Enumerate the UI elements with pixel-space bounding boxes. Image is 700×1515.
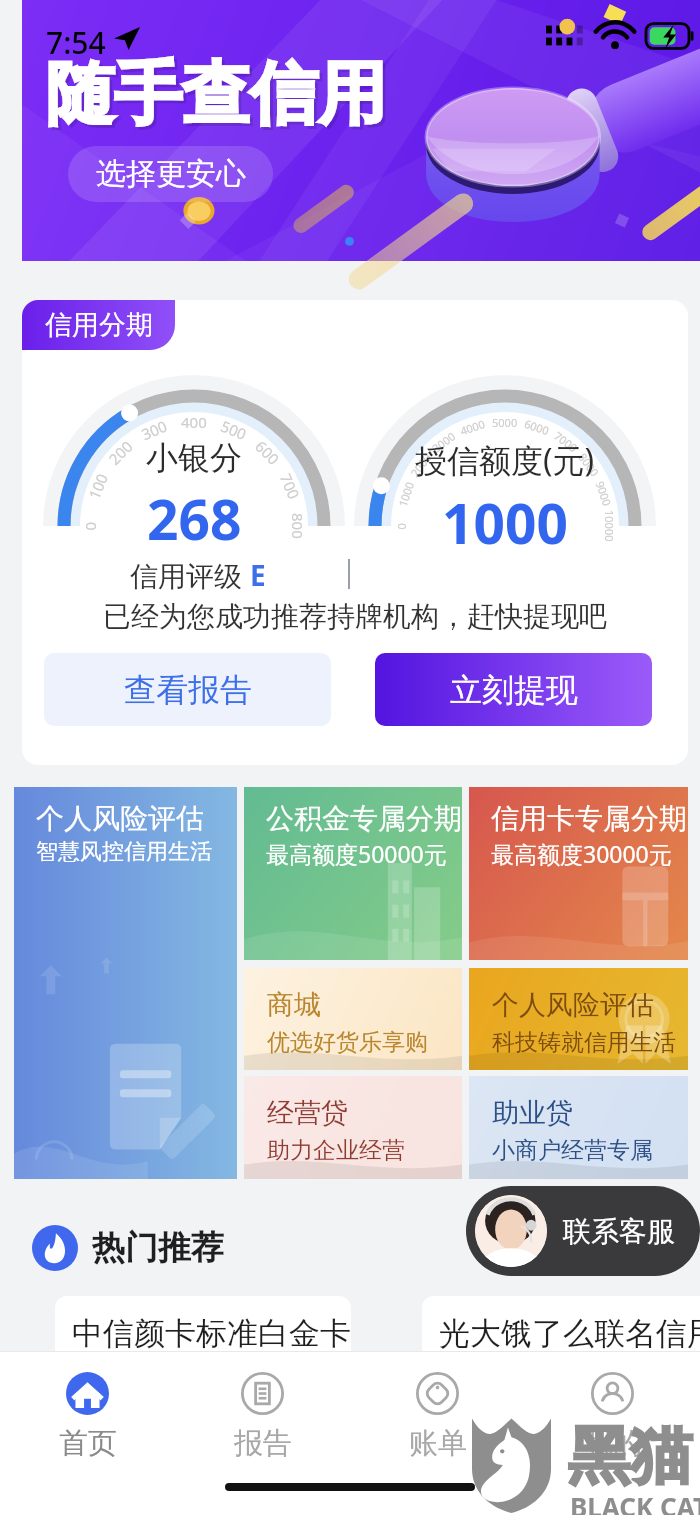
- other: 账单: [416, 1372, 459, 1415]
- staticText: 信用评级: [130, 556, 250, 594]
- button[interactable]: 联系客服: [466, 1186, 700, 1276]
- staticText: 268: [147, 481, 242, 556]
- other: 我的: [591, 1372, 634, 1415]
- staticText: 黑猫: [568, 1417, 692, 1495]
- staticText: 热门推荐: [92, 1227, 224, 1269]
- button[interactable]: 信用卡专属分期: [469, 787, 688, 960]
- staticText: 个人风险评估: [492, 988, 654, 1022]
- button[interactable]: 个人风险评估: [469, 968, 688, 1070]
- staticText: E: [250, 556, 266, 594]
- button[interactable]: 中信颜卡标准白金卡: [55, 1296, 351, 1392]
- staticText: 助力企业经营: [267, 1136, 405, 1165]
- button[interactable]: 公积金专属分期: [244, 787, 462, 960]
- button[interactable]: 选择更安心: [68, 146, 273, 202]
- button[interactable]: 我的: [525, 1352, 700, 1507]
- staticText: 我的: [584, 1425, 642, 1462]
- staticText: 智慧风控信用生活: [36, 838, 212, 866]
- staticText: 小银分: [146, 438, 242, 478]
- button[interactable]: 光大饿了么联名信用卡: [422, 1296, 700, 1392]
- staticText: 授信额度(元): [415, 438, 595, 482]
- staticText: BLACK CAT: [570, 1489, 700, 1515]
- button[interactable]: 报告: [175, 1352, 350, 1507]
- staticText: 助业贷: [492, 1096, 573, 1130]
- staticText: 中信颜卡标准白金卡: [72, 1314, 351, 1353]
- button[interactable]: 账单: [350, 1352, 525, 1507]
- button[interactable]: 助业贷: [469, 1076, 688, 1179]
- staticText: 科技铸就信用生活: [492, 1028, 676, 1057]
- staticText: 个人风险评估: [36, 801, 204, 836]
- staticText: 7:54: [46, 22, 106, 63]
- staticText: 优选好货乐享购: [267, 1028, 428, 1057]
- staticText: 立刻提现: [450, 670, 578, 710]
- button[interactable]: 查看报告: [44, 653, 331, 726]
- staticText: 公积金专属分期: [266, 801, 462, 836]
- staticText: 商城: [267, 988, 321, 1022]
- staticText: 报告: [234, 1425, 292, 1462]
- other: 报告: [241, 1372, 284, 1415]
- button[interactable]: 首页: [0, 1352, 175, 1507]
- staticText: 随手查信用: [49, 55, 389, 141]
- button[interactable]: 个人风险评估: [14, 787, 237, 1179]
- button[interactable]: 商城: [244, 968, 462, 1070]
- staticText: 已经为您成功推荐持牌机构，赶快提现吧: [22, 599, 688, 634]
- button[interactable]: 经营贷: [244, 1076, 462, 1179]
- staticText: 最高额度50000元: [266, 838, 447, 869]
- staticText: 信用卡专属分期: [491, 801, 687, 836]
- staticText: 首页: [59, 1425, 117, 1462]
- staticText: 小商户经营专属: [492, 1136, 653, 1165]
- staticText: 信用分期: [45, 308, 153, 342]
- staticText: 账单: [409, 1425, 467, 1462]
- staticText: 光大饿了么联名信用卡: [439, 1314, 700, 1353]
- staticText: 选择更安心: [96, 155, 246, 193]
- staticText: 经营贷: [267, 1096, 348, 1130]
- other: 首页: [66, 1372, 109, 1415]
- staticText: 查看报告: [124, 670, 252, 710]
- staticText: 联系客服: [563, 1214, 675, 1249]
- button[interactable]: 立刻提现: [375, 653, 652, 726]
- staticText: 随手查信用: [46, 52, 386, 138]
- staticText: 1000: [442, 485, 568, 560]
- staticText: 最高额度30000元: [491, 838, 672, 869]
